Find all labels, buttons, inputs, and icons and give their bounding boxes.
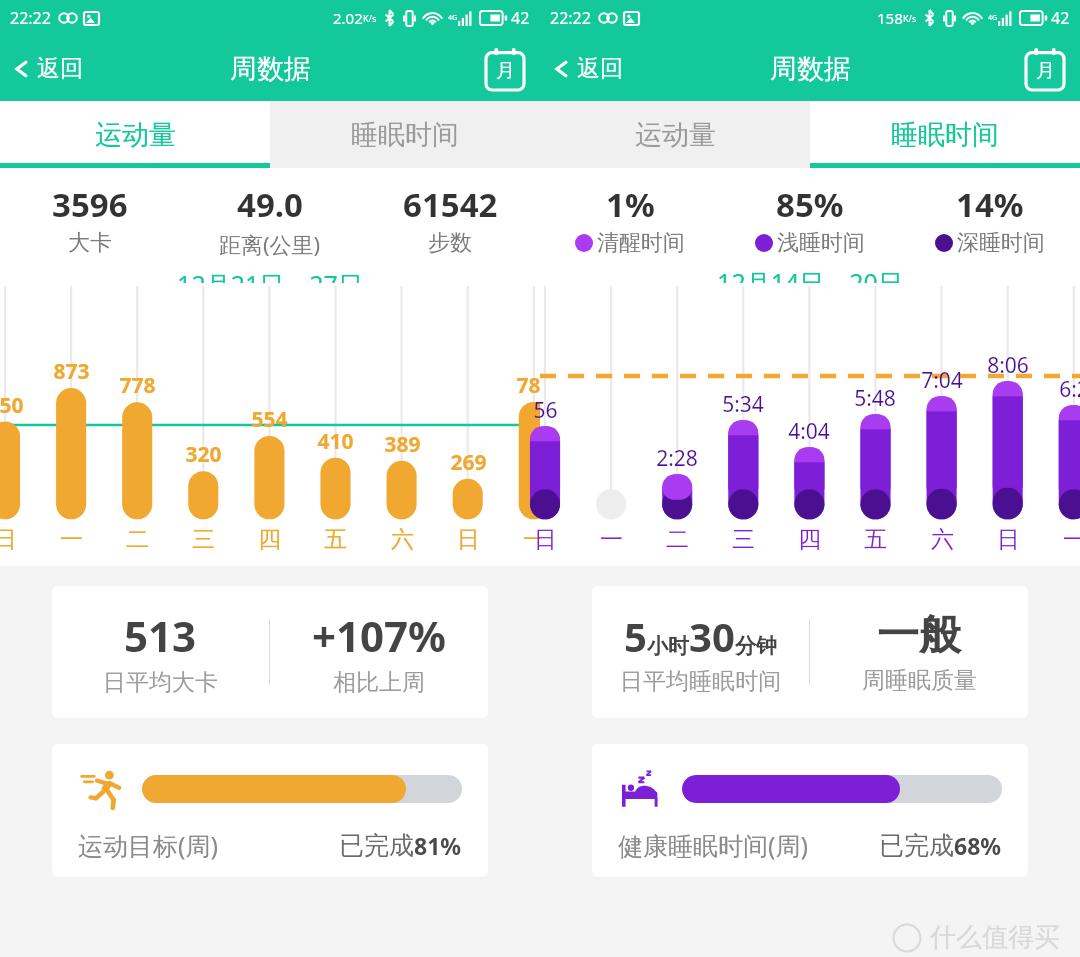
staticText: 一 <box>1063 525 1080 554</box>
staticText: 4:04 <box>788 417 830 446</box>
staticText: 清醒时间 <box>597 229 685 257</box>
staticText: 22:22 <box>550 7 591 29</box>
staticText: 4G <box>988 13 998 23</box>
staticText: 一 <box>60 525 83 554</box>
staticText: 四 <box>798 525 821 554</box>
staticText: 周睡眠质量 <box>862 666 977 695</box>
staticText: 5:34 <box>722 390 764 419</box>
staticText: 6:2 <box>1059 375 1080 404</box>
staticText: +107% <box>312 607 446 664</box>
button[interactable]: 睡眠时间 <box>270 101 540 168</box>
staticText: 5 <box>624 609 647 663</box>
staticText: 睡眠时间 <box>891 118 999 152</box>
button[interactable]: 运动目标(周) <box>52 744 488 877</box>
staticText: 2:28 <box>656 444 698 473</box>
staticText: 日 <box>997 525 1020 554</box>
staticText: 410 <box>317 427 354 456</box>
staticText: 56 <box>533 396 558 425</box>
staticText: 返回 <box>577 54 623 83</box>
button[interactable]: 睡眠时间 <box>810 101 1080 168</box>
staticText: 月 <box>1036 59 1055 83</box>
button[interactable]: 运动量 <box>0 101 270 168</box>
staticText: 61542 <box>403 182 498 227</box>
staticText: 一 <box>600 525 623 554</box>
staticText: 12月21日－27日 <box>0 267 540 283</box>
staticText: 85% <box>776 182 844 227</box>
button[interactable]: Monthly data <box>1022 46 1068 92</box>
staticText: 已完成 <box>879 830 954 861</box>
staticText: 日 <box>0 525 17 554</box>
staticText: 大卡 <box>68 229 112 257</box>
button[interactable]: Monthly data <box>482 46 528 92</box>
staticText: 5:48 <box>854 384 896 413</box>
staticText: 269 <box>450 448 487 477</box>
staticText: 一般 <box>877 609 961 662</box>
staticText: 五 <box>324 525 347 554</box>
staticText: 68% <box>954 830 1002 861</box>
staticText: 1% <box>606 182 655 227</box>
staticText: 8:06 <box>987 351 1029 380</box>
button[interactable]: 运动量 <box>540 101 810 168</box>
staticText: 389 <box>384 430 421 459</box>
staticText: 一 <box>523 525 546 554</box>
staticText: 650 <box>0 391 24 420</box>
staticText: 日 <box>534 525 557 554</box>
staticText: 81% <box>414 830 462 861</box>
staticText: 日 <box>457 525 480 554</box>
staticText: 相比上周 <box>333 668 425 697</box>
staticText: 49.0 <box>237 182 303 227</box>
staticText: 42 <box>511 7 530 29</box>
staticText: 运动量 <box>635 118 716 152</box>
staticText: 分钟 <box>735 633 777 659</box>
staticText: 873 <box>53 357 90 386</box>
staticText: 六 <box>391 525 414 554</box>
staticText: 二 <box>126 525 149 554</box>
staticText: 三 <box>732 525 755 554</box>
button[interactable]: 5 <box>592 586 1028 718</box>
staticText: 健康睡眠时间(周) <box>618 828 809 862</box>
staticText: 小时 <box>647 633 689 659</box>
staticText: 五 <box>864 525 887 554</box>
staticText: 浅睡时间 <box>777 229 865 257</box>
staticText: 运动量 <box>95 118 176 152</box>
staticText: 778 <box>119 371 156 400</box>
staticText: 14% <box>956 182 1024 227</box>
staticText: 周数据 <box>230 52 311 86</box>
staticText: 返回 <box>37 54 83 83</box>
staticText: 320 <box>185 440 222 469</box>
staticText: 步数 <box>428 229 472 257</box>
staticText: 日平均大卡 <box>103 668 218 697</box>
staticText: 六 <box>931 525 954 554</box>
staticText: 周数据 <box>770 52 851 86</box>
staticText: 30 <box>689 609 735 663</box>
staticText: 二 <box>666 525 689 554</box>
button[interactable]: 513 <box>52 586 488 718</box>
button[interactable]: 健康睡眠时间(周) <box>592 744 1028 877</box>
staticText: 三 <box>192 525 215 554</box>
staticText: 什么值得买 <box>930 921 1060 954</box>
staticText: 睡眠时间 <box>351 118 459 152</box>
staticText: K/s <box>363 12 377 24</box>
staticText: 42 <box>1051 7 1070 29</box>
staticText: 3596 <box>52 182 128 227</box>
staticText: 运动目标(周) <box>78 828 219 862</box>
staticText: 780 <box>516 371 553 400</box>
staticText: 7:04 <box>921 366 963 395</box>
staticText: 22:22 <box>10 7 51 29</box>
staticText: 已完成 <box>339 830 414 861</box>
staticText: 深睡时间 <box>957 229 1045 257</box>
staticText: K/s <box>903 12 917 24</box>
staticText: 四 <box>258 525 281 554</box>
staticText: 12月14日－20日 <box>540 265 1080 283</box>
staticText: 554 <box>251 405 288 434</box>
staticText: 158 <box>877 8 903 28</box>
button[interactable]: 返回 <box>540 46 635 91</box>
staticText: 日平均睡眠时间 <box>620 667 781 696</box>
staticText: 4G <box>448 13 458 23</box>
staticText: 距离(公里) <box>219 229 321 259</box>
button[interactable]: 返回 <box>0 46 95 91</box>
staticText: 513 <box>124 607 197 664</box>
staticText: 2.02 <box>333 8 363 28</box>
staticText: 月 <box>496 59 515 83</box>
